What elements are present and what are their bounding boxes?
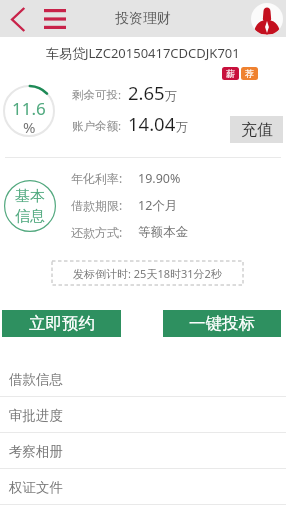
staticText: 万 bbox=[176, 119, 188, 134]
staticText: 剩余可投: bbox=[72, 87, 122, 103]
staticText: 充值 bbox=[241, 120, 273, 140]
staticText: 2.65 bbox=[128, 80, 165, 105]
staticText: 审批进度 bbox=[9, 407, 63, 424]
staticText: 14.04 bbox=[128, 111, 176, 136]
staticText: 年化利率: bbox=[71, 170, 138, 186]
button[interactable]: 充值 bbox=[230, 116, 283, 143]
staticText: 等额本金 bbox=[138, 224, 188, 240]
staticText: 信息 bbox=[15, 207, 45, 226]
staticText: 基本 bbox=[15, 187, 45, 206]
staticText: 考察相册 bbox=[9, 443, 63, 460]
button[interactable]: 立即预约 bbox=[2, 310, 121, 337]
staticText: 薪 bbox=[226, 68, 235, 79]
staticText: 荐 bbox=[245, 68, 254, 79]
staticText: 投资理财 bbox=[115, 10, 171, 28]
staticText: 万 bbox=[165, 88, 177, 103]
staticText: 立即预约 bbox=[29, 313, 95, 334]
staticText: 一键投标 bbox=[189, 313, 255, 334]
staticText: 19.90% bbox=[138, 170, 181, 187]
staticText: % bbox=[23, 117, 36, 137]
staticText: 账户余额: bbox=[72, 118, 122, 134]
button[interactable]: 审批进度 bbox=[0, 397, 286, 433]
staticText: 还款方式: bbox=[71, 224, 138, 240]
staticText: 发标倒计时: 25天18时31分2秒 bbox=[73, 266, 222, 281]
staticText: 12个月 bbox=[138, 197, 178, 214]
staticText: 车易贷JLZC20150417CDCDJK701 bbox=[46, 44, 240, 62]
staticText: 权证文件 bbox=[9, 479, 63, 496]
button[interactable]: 借款信息 bbox=[0, 361, 286, 397]
button[interactable]: Profile bbox=[251, 3, 283, 35]
staticText: 借款期限: bbox=[71, 197, 138, 213]
button[interactable]: 权证文件 bbox=[0, 469, 286, 505]
button[interactable]: 一键投标 bbox=[163, 310, 281, 337]
button[interactable]: Back bbox=[3, 4, 33, 34]
button[interactable]: 考察相册 bbox=[0, 433, 286, 469]
button[interactable]: Menu bbox=[40, 4, 70, 34]
staticText: 11.6 bbox=[12, 97, 46, 120]
staticText: 借款信息 bbox=[9, 371, 63, 388]
